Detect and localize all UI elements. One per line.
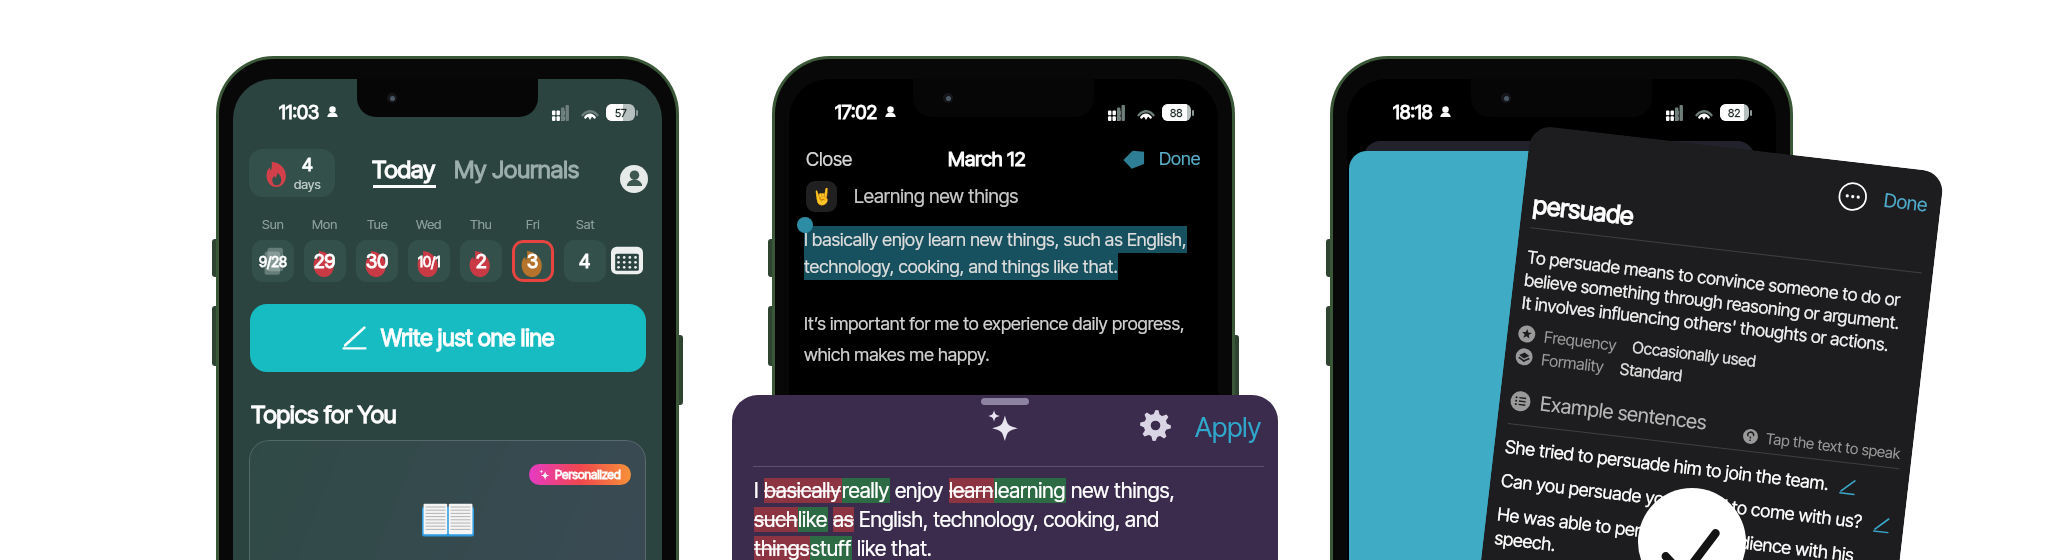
staticText: like that. (852, 536, 932, 560)
button[interactable]: Tag (1122, 148, 1145, 171)
staticText: 3 (527, 250, 539, 273)
staticText: Topics for You (251, 400, 397, 429)
staticText: enjoy (890, 478, 949, 503)
staticText: 2 (476, 250, 487, 273)
staticText: It’s important for me to experience dail… (804, 313, 1185, 335)
button[interactable]: 4 (249, 149, 335, 197)
button[interactable]: Open calendar (611, 245, 643, 276)
staticText: Write just one line (381, 324, 555, 352)
staticText: Example sentences (1539, 392, 1709, 435)
staticText: as (833, 507, 854, 532)
staticText: 57 (615, 106, 627, 119)
staticText: I basically enjoy learn new things, such… (804, 229, 1187, 251)
staticText: Thu (470, 216, 492, 232)
staticText: Sun (262, 216, 284, 232)
staticText: She tried to persuade him to join the te… (1504, 436, 1830, 495)
button[interactable]: She tried to persuade him to join the te… (1504, 436, 1857, 498)
staticText: such (754, 507, 798, 532)
staticText: really (842, 478, 890, 503)
staticText: which makes me happy. (804, 344, 990, 366)
staticText: Personalized (555, 467, 621, 482)
staticText: like (798, 507, 828, 532)
button[interactable]: Today (372, 155, 436, 188)
staticText: 18:18 (1393, 101, 1433, 124)
staticText: 30 (366, 250, 389, 273)
staticText: Tue (367, 216, 388, 232)
staticText: basically (764, 478, 842, 503)
staticText: learning (994, 478, 1066, 503)
staticText: new things, (1066, 478, 1175, 503)
staticText: Can you persuade your friend to come wit… (1500, 470, 1864, 533)
staticText: stuff (810, 536, 852, 560)
staticText: Standard (1619, 358, 1684, 385)
button[interactable]: Write just one line (250, 304, 646, 372)
staticText: To persuade means to convince someone to… (1521, 246, 1904, 357)
staticText: 17:02 (835, 101, 878, 124)
button[interactable]: 4 (564, 240, 606, 282)
staticText: 82 (1728, 106, 1741, 119)
staticText: 4 (579, 250, 591, 273)
staticText: Fri (526, 216, 540, 232)
button[interactable]: Apply (1195, 411, 1262, 444)
staticText: I (754, 478, 764, 503)
button[interactable]: Settings (1140, 410, 1171, 441)
staticText: Formality (1540, 349, 1605, 375)
button[interactable]: More options (1837, 180, 1869, 213)
button[interactable]: 2 (460, 240, 502, 282)
button[interactable]: Done (1883, 189, 1929, 217)
staticText: Today (372, 155, 436, 184)
staticText: Wed (416, 216, 442, 232)
button[interactable]: 29 (304, 240, 346, 282)
staticText: Sat (576, 216, 595, 232)
button[interactable]: Confirm (1638, 488, 1746, 560)
staticText: learn (949, 478, 994, 503)
button[interactable]: AI assist (987, 409, 1019, 441)
button[interactable]: 30 (356, 240, 398, 282)
button[interactable]: My Journals (454, 155, 580, 184)
staticText: 🤘 (812, 187, 832, 206)
staticText: things (754, 536, 810, 560)
staticText: persuade (1531, 189, 1636, 231)
button[interactable]: Profile (620, 165, 648, 193)
button[interactable]: 3 (512, 240, 554, 282)
staticText: Tap the text to speak (1765, 429, 1902, 462)
staticText: Mon (312, 216, 338, 232)
staticText: technology, cooking, and things like tha… (804, 256, 1118, 278)
staticText: 10/1 (418, 253, 441, 270)
button[interactable]: 9/28 (252, 240, 294, 282)
staticText: 88 (1170, 106, 1183, 119)
staticText: 9/28 (259, 253, 288, 270)
staticText: Occasionally used (1631, 337, 1758, 370)
staticText: Frequency (1543, 327, 1618, 354)
button[interactable]: Can you persuade your friend to come wit… (1500, 470, 1891, 536)
staticText: English, technology, cooking, and (854, 507, 1160, 532)
button[interactable]: Close (806, 148, 853, 171)
staticText: He was able to persuade the audience wit… (1493, 503, 1890, 560)
button[interactable]: Personalized (249, 440, 646, 560)
staticText: 11:03 (279, 101, 320, 124)
staticText: Learning new things (854, 185, 1019, 208)
staticText: 29 (314, 250, 336, 273)
button[interactable]: 10/1 (408, 240, 450, 282)
staticText: March 12 (948, 147, 1026, 171)
button[interactable]: Done (1159, 148, 1201, 170)
staticText: days (294, 176, 321, 192)
staticText: 4 (302, 154, 313, 176)
